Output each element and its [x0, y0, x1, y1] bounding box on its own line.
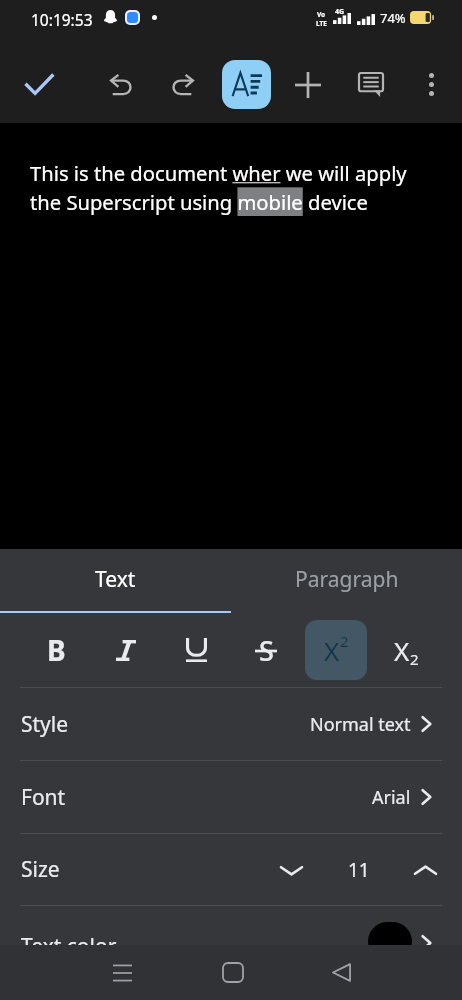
- button[interactable]: Text formatting: [218, 46, 274, 123]
- button[interactable]: Increase font size: [392, 842, 459, 898]
- button[interactable]: Undo: [93, 46, 149, 123]
- staticText: Arial: [372, 785, 411, 810]
- button[interactable]: Text: [0, 549, 231, 613]
- button[interactable]: Comments: [343, 46, 399, 123]
- button[interactable]: Italic: [91, 613, 161, 687]
- staticText: Text: [95, 565, 136, 594]
- staticText: Style: [21, 710, 69, 739]
- button[interactable]: Decrease font size: [258, 842, 325, 898]
- staticText: Font: [21, 783, 66, 812]
- button[interactable]: Recent apps: [93, 945, 151, 1000]
- staticText: LTE: [316, 19, 327, 28]
- button[interactable]: Font: [0, 761, 462, 833]
- button[interactable]: Home: [204, 945, 262, 1000]
- staticText: Size: [21, 855, 60, 884]
- staticText: This is the document wher we will apply …: [30, 159, 407, 216]
- button[interactable]: Superscript: [301, 613, 371, 687]
- staticText: S: [259, 632, 274, 669]
- button[interactable]: Done: [11, 46, 67, 123]
- button[interactable]: Font size 11: [325, 842, 392, 898]
- button[interactable]: Insert: [280, 46, 336, 123]
- staticText: 2: [410, 649, 419, 669]
- staticText: Paragraph: [295, 565, 399, 594]
- button[interactable]: Style: [0, 688, 462, 760]
- button[interactable]: B: [21, 613, 91, 687]
- button[interactable]: Subscript: [371, 613, 441, 687]
- staticText: X: [324, 633, 340, 668]
- staticText: 4G: [335, 7, 345, 17]
- staticText: 74%: [380, 9, 406, 27]
- staticText: 11: [348, 857, 370, 883]
- staticText: 2: [340, 631, 349, 651]
- button[interactable]: Redo: [155, 46, 211, 123]
- button[interactable]: Strikethrough: [231, 613, 301, 687]
- button[interactable]: Paragraph: [231, 549, 462, 613]
- staticText: 10:19:53: [31, 9, 93, 30]
- staticText: B: [47, 631, 66, 669]
- staticText: Vo: [317, 10, 326, 19]
- button[interactable]: Back: [312, 945, 370, 1000]
- staticText: Text color: [21, 932, 117, 961]
- staticText: Normal text: [310, 712, 411, 737]
- button[interactable]: More options: [403, 46, 459, 123]
- button[interactable]: Underline: [161, 613, 231, 687]
- staticText: X: [394, 633, 410, 668]
- button[interactable]: Text color: [0, 906, 462, 945]
